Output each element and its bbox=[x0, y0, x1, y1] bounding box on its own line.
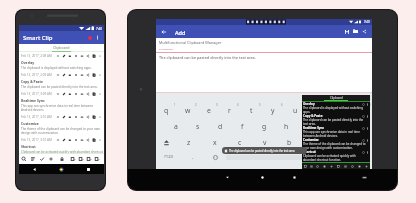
button[interactable]: Panel action 6 bbox=[342, 163, 349, 169]
button[interactable]: h bbox=[275, 118, 297, 134]
button[interactable]: Panel action 8 bbox=[356, 163, 363, 169]
button[interactable]: Label bbox=[67, 137, 73, 143]
button[interactable]: n bbox=[302, 134, 327, 150]
button[interactable]: Delete bbox=[73, 137, 79, 143]
button[interactable]: View bbox=[79, 53, 85, 59]
button[interactable]: Label bbox=[67, 114, 73, 120]
button[interactable]: Import bbox=[86, 156, 92, 162]
button[interactable]: Add clip bbox=[48, 156, 54, 162]
button[interactable]: Realtime Sync bbox=[303, 126, 369, 138]
button[interactable]: Label bbox=[67, 72, 73, 78]
button[interactable]: Clipboard bbox=[302, 95, 370, 169]
button[interactable]: Feb 13, 2017, 2:09 AM bbox=[19, 71, 104, 90]
button[interactable]: p bbox=[350, 102, 372, 118]
button[interactable]: Panel action 9 bbox=[363, 163, 370, 169]
button[interactable]: Backspace bbox=[352, 134, 372, 150]
button[interactable]: Minimize bbox=[55, 72, 61, 78]
button[interactable]: i bbox=[306, 102, 328, 118]
button[interactable]: Minimize bbox=[55, 91, 61, 97]
button[interactable]: Copy bbox=[91, 72, 97, 78]
button[interactable]: Share bbox=[85, 137, 91, 143]
button[interactable]: Copy all bbox=[70, 156, 76, 162]
button[interactable]: Panel action 2 bbox=[314, 163, 321, 169]
button[interactable]: Overlay bbox=[303, 102, 369, 114]
button[interactable]: Copy bbox=[91, 91, 97, 97]
button[interactable]: Clipboard bbox=[19, 44, 104, 51]
button[interactable]: Panel action 3 bbox=[321, 163, 328, 169]
button[interactable]: Back bbox=[31, 166, 38, 173]
button[interactable]: Panel action 0 bbox=[302, 163, 308, 169]
button[interactable]: Symbols bbox=[156, 150, 182, 164]
button[interactable]: l bbox=[341, 118, 363, 134]
button[interactable]: More options bbox=[94, 34, 101, 41]
button[interactable]: View bbox=[79, 137, 85, 143]
button[interactable]: y bbox=[262, 102, 284, 118]
button[interactable]: Copy bbox=[91, 137, 97, 143]
button[interactable]: Share bbox=[360, 27, 369, 36]
button[interactable]: Edit bbox=[61, 72, 67, 78]
button[interactable]: Share bbox=[85, 91, 91, 97]
button[interactable]: More bbox=[97, 53, 103, 59]
button[interactable]: z bbox=[176, 134, 202, 150]
button[interactable]: d bbox=[209, 118, 231, 134]
button[interactable]: u bbox=[284, 102, 306, 118]
button[interactable]: Home bbox=[58, 166, 65, 173]
button[interactable]: Suggestion 3 bbox=[300, 93, 372, 102]
button[interactable]: Shift bbox=[156, 134, 176, 150]
button[interactable]: Recents bbox=[291, 174, 298, 181]
button[interactable]: s bbox=[187, 118, 209, 134]
button[interactable]: r bbox=[219, 102, 240, 118]
button[interactable]: Hide keyboard bbox=[224, 174, 231, 181]
button[interactable]: w bbox=[177, 102, 198, 118]
button[interactable]: Folder bbox=[351, 27, 360, 36]
button[interactable]: Minimize bbox=[55, 114, 61, 120]
button[interactable]: Customize bbox=[303, 138, 369, 150]
button[interactable]: b bbox=[277, 134, 302, 150]
button[interactable]: g bbox=[253, 118, 275, 134]
button[interactable]: t bbox=[240, 102, 262, 118]
button[interactable]: Feb 13, 2017, 2:08 AM bbox=[19, 52, 104, 71]
button[interactable]: View bbox=[79, 114, 85, 120]
button[interactable]: v bbox=[252, 134, 277, 150]
button[interactable]: Panel action 5 bbox=[335, 163, 342, 169]
button[interactable]: x bbox=[202, 134, 227, 150]
button[interactable]: Delete bbox=[73, 91, 79, 97]
button[interactable]: Label bbox=[67, 53, 73, 59]
button[interactable]: Edit bbox=[61, 53, 67, 59]
button[interactable]: m bbox=[327, 134, 352, 150]
button[interactable]: Share bbox=[85, 53, 91, 59]
button[interactable]: Panel action 1 bbox=[308, 163, 314, 169]
button[interactable]: Label bbox=[67, 91, 73, 97]
button[interactable]: Edit bbox=[61, 137, 67, 143]
button[interactable]: Copy bbox=[91, 53, 97, 59]
button[interactable]: Feb 13, 2017, 3:10 AM bbox=[19, 113, 104, 136]
button[interactable]: Space bbox=[226, 155, 350, 160]
button[interactable]: a bbox=[165, 118, 187, 134]
button[interactable]: Minimize bbox=[55, 53, 61, 59]
button[interactable]: More bbox=[97, 114, 103, 120]
button[interactable]: Save bbox=[342, 27, 351, 36]
button[interactable]: View bbox=[79, 72, 85, 78]
button[interactable]: j bbox=[297, 118, 319, 134]
button[interactable]: Period bbox=[350, 150, 372, 164]
button[interactable]: c bbox=[227, 134, 252, 150]
button[interactable]: Delete bbox=[73, 72, 79, 78]
button[interactable]: Select all bbox=[39, 156, 45, 162]
button[interactable]: Lock bbox=[59, 156, 65, 162]
button[interactable]: Panel action 7 bbox=[349, 163, 356, 169]
button[interactable]: o bbox=[328, 102, 350, 118]
button[interactable]: Copy & Paste bbox=[303, 114, 369, 126]
button[interactable]: e bbox=[198, 102, 219, 118]
button[interactable]: Share bbox=[85, 114, 91, 120]
button[interactable]: Record clip bbox=[86, 34, 93, 41]
button[interactable]: Back bbox=[160, 28, 168, 36]
button[interactable]: Emoji bbox=[204, 150, 226, 164]
button[interactable]: More bbox=[97, 91, 103, 97]
button[interactable]: Delete bbox=[73, 114, 79, 120]
button[interactable]: Home bbox=[259, 174, 266, 181]
button[interactable]: Sort bbox=[30, 156, 36, 162]
button[interactable]: Shortcut bbox=[303, 150, 369, 162]
